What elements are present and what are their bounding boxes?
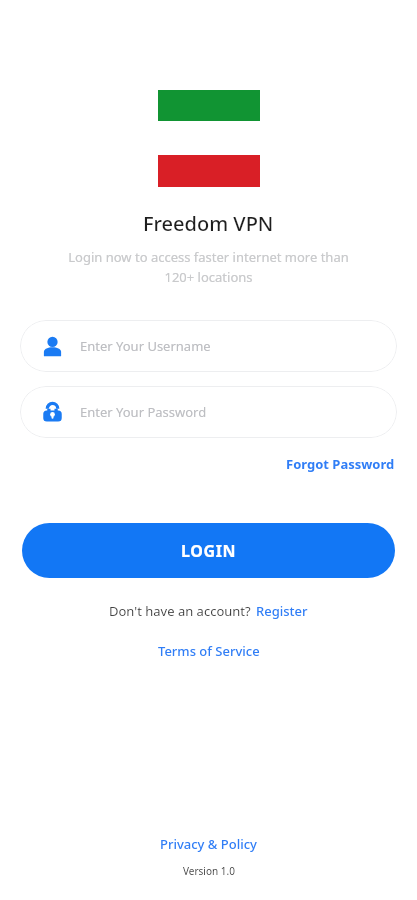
staticText: Freedom VPN [143, 210, 274, 237]
button[interactable]: LOGIN [22, 523, 395, 578]
staticText: Privacy & Policy [160, 835, 257, 853]
staticText: Terms of Service [158, 642, 260, 660]
staticText: Forgot Password [286, 455, 395, 473]
staticText: Login now to access faster internet more… [54, 248, 363, 286]
staticText: Enter Your Username [80, 337, 211, 355]
staticText: Don't have an account? [109, 602, 255, 620]
staticText: Enter Your Password [80, 403, 207, 421]
button[interactable]: Enter Your Username [20, 320, 397, 372]
staticText: Register [256, 602, 308, 620]
button[interactable]: Privacy & Policy [154, 832, 263, 856]
staticText: Version 1.0 [183, 864, 235, 878]
button[interactable]: Enter Your Password [20, 386, 397, 438]
button[interactable]: Register [255, 600, 309, 622]
staticText: LOGIN [181, 540, 237, 562]
button[interactable]: Terms of Service [152, 639, 266, 663]
button[interactable]: Forgot Password [284, 452, 397, 476]
